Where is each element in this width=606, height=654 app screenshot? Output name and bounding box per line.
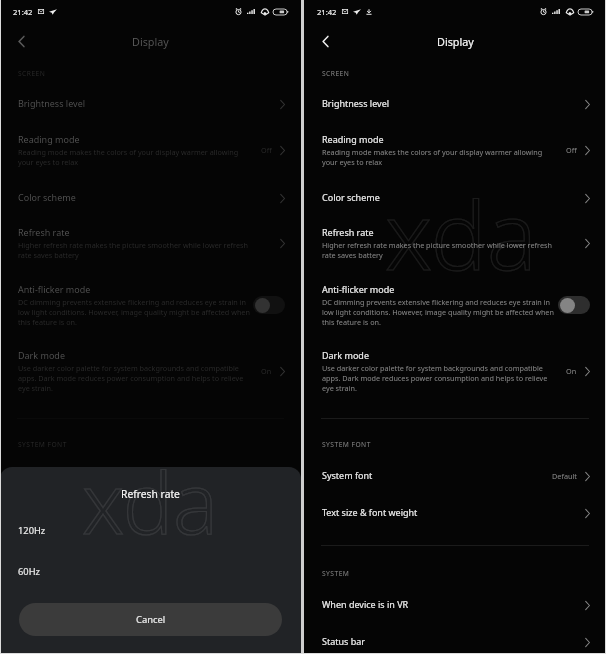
staticText: On: [261, 366, 272, 376]
button[interactable]: System font: [0, 457, 301, 495]
staticText: Anti-flicker mode: [322, 283, 395, 295]
button[interactable]: Refresh rate: [304, 215, 606, 273]
staticText: Dark mode: [18, 349, 65, 361]
staticText: Status bar: [18, 635, 62, 647]
button[interactable]: Color scheme: [304, 179, 606, 215]
staticText: Off: [566, 145, 577, 155]
button[interactable]: When device is in VR: [304, 586, 606, 624]
staticText: Higher refresh rate makes the picture sm…: [322, 240, 556, 260]
staticText: Display: [437, 34, 474, 49]
staticText: Use darker color palette for system back…: [18, 363, 252, 393]
staticText: Refresh rate: [18, 226, 70, 238]
staticText: Color scheme: [18, 191, 76, 203]
button[interactable]: Text size & font weight: [0, 495, 301, 533]
staticText: Higher refresh rate makes the picture sm…: [18, 240, 252, 260]
staticText: 21:42: [317, 7, 337, 17]
staticText: Cancel: [136, 613, 166, 626]
button[interactable]: 60Hz: [0, 552, 301, 591]
button[interactable]: Dark mode: [0, 338, 301, 406]
staticText: SYSTEM FONT: [18, 440, 67, 449]
button[interactable]: Brightness level: [304, 85, 606, 121]
staticText: Dark mode: [322, 349, 369, 361]
staticText: On: [566, 366, 577, 376]
staticText: xda: [385, 170, 538, 298]
staticText: xda: [82, 467, 218, 558]
button[interactable]: Anti-flicker mode: [304, 272, 606, 340]
staticText: Reading mode makes the colors of your di…: [18, 147, 252, 167]
staticText: When device is in VR: [18, 598, 105, 610]
staticText: Off: [261, 145, 272, 155]
button[interactable]: Status bar: [304, 624, 606, 654]
button[interactable]: Text size & font weight: [304, 495, 606, 533]
button[interactable]: Back: [315, 31, 335, 51]
staticText: Color scheme: [322, 191, 380, 203]
button[interactable]: System font: [304, 457, 606, 495]
staticText: SCREEN: [322, 69, 350, 78]
button[interactable]: Reading mode: [0, 121, 301, 179]
staticText: Reading mode: [18, 133, 80, 145]
staticText: 120Hz: [18, 524, 46, 537]
staticText: DC dimming prevents extensive flickering…: [18, 297, 252, 327]
staticText: Brightness level: [18, 97, 86, 109]
button[interactable]: Back: [11, 31, 31, 51]
button[interactable]: Anti-flicker mode toggle: [253, 296, 285, 314]
staticText: Anti-flicker mode: [18, 283, 91, 295]
staticText: DC dimming prevents extensive flickering…: [322, 297, 556, 327]
button[interactable]: Dark mode: [304, 338, 606, 406]
staticText: Refresh rate: [121, 487, 180, 501]
staticText: Text size & font weight: [18, 506, 114, 518]
staticText: SYSTEM: [18, 569, 46, 578]
staticText: Reading mode: [322, 133, 384, 145]
button[interactable]: 120Hz: [0, 511, 301, 550]
staticText: 60Hz: [18, 565, 40, 578]
staticText: Refresh rate: [322, 226, 374, 238]
button[interactable]: Cancel: [19, 603, 282, 636]
staticText: 21:42: [13, 7, 33, 17]
staticText: Brightness level: [322, 97, 390, 109]
button[interactable]: Anti-flicker mode: [0, 272, 301, 340]
staticText: Reading mode makes the colors of your di…: [322, 147, 556, 167]
button[interactable]: Refresh rate: [0, 215, 301, 273]
button[interactable]: Status bar: [0, 624, 301, 654]
button[interactable]: Reading mode: [304, 121, 606, 179]
staticText: Display: [132, 34, 169, 49]
staticText: SYSTEM: [322, 569, 350, 578]
staticText: Default: [552, 471, 577, 481]
staticText: System font: [322, 469, 373, 481]
staticText: SCREEN: [18, 69, 46, 78]
button[interactable]: When device is in VR: [0, 586, 301, 624]
staticText: When device is in VR: [322, 598, 409, 610]
button[interactable]: Color scheme: [0, 179, 301, 215]
button[interactable]: Brightness level: [0, 85, 301, 121]
staticText: Status bar: [322, 635, 366, 647]
staticText: Use darker color palette for system back…: [322, 363, 556, 393]
staticText: Text size & font weight: [322, 506, 418, 518]
button[interactable]: Anti-flicker mode toggle: [558, 296, 590, 314]
staticText: SYSTEM FONT: [322, 440, 371, 449]
